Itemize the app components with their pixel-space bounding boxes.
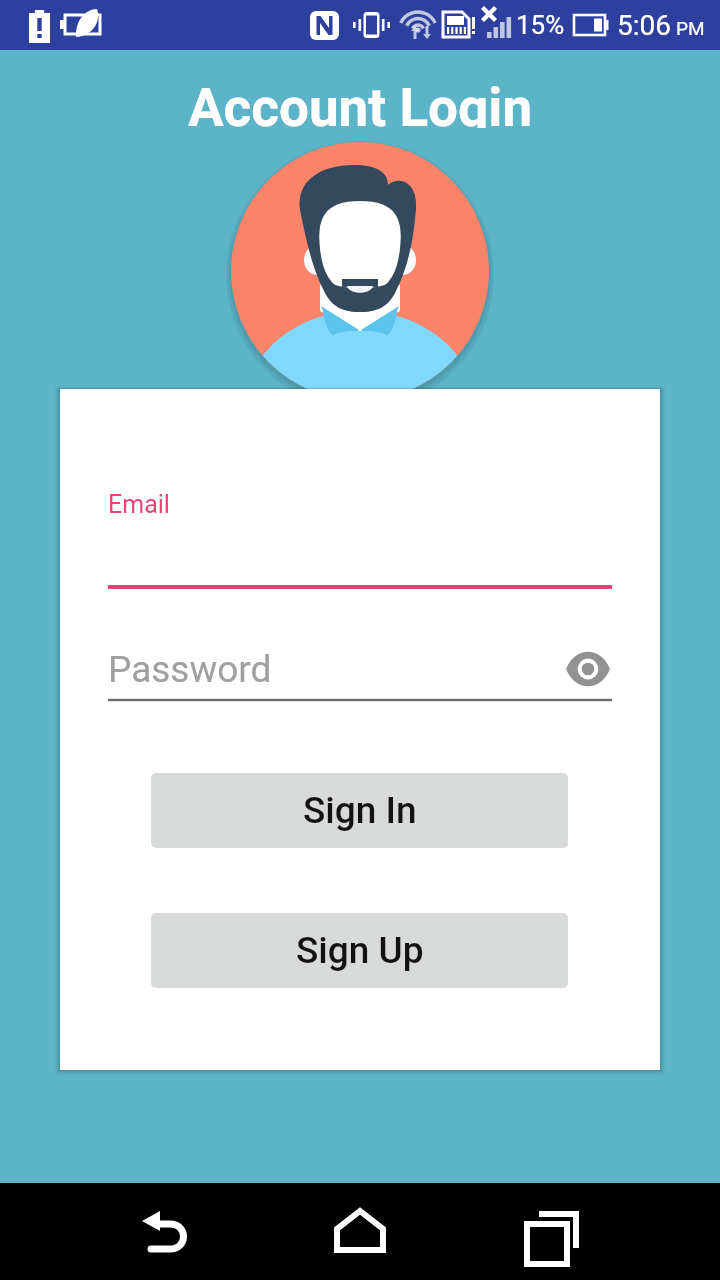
- button[interactable]: Sign Up: [151, 913, 568, 988]
- button[interactable]: Show password: [556, 638, 620, 702]
- staticText: Email: [108, 490, 170, 519]
- button[interactable]: Sign In: [151, 773, 568, 848]
- staticText: PM: [676, 17, 705, 39]
- staticText: Account Login: [0, 77, 720, 128]
- button[interactable]: Recents: [520, 1192, 600, 1272]
- button[interactable]: Back: [120, 1192, 200, 1272]
- staticText: Sign Up: [296, 929, 424, 972]
- staticText: 15%: [516, 10, 565, 40]
- staticText: Sign In: [303, 789, 417, 832]
- staticText: 5:06: [617, 9, 671, 42]
- staticText: Password: [108, 648, 272, 691]
- button[interactable]: Home: [320, 1192, 400, 1272]
